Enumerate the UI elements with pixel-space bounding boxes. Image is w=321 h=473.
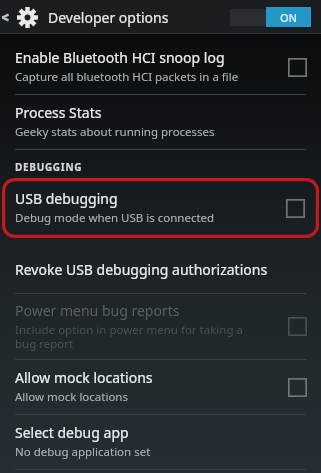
staticText: Developer options — [48, 8, 169, 27]
staticText: Allow mock locations — [15, 389, 128, 405]
staticText: Process Stats — [15, 103, 102, 122]
button[interactable]: USB debugging — [2, 178, 319, 238]
button[interactable]: Navigate up — [0, 0, 11, 34]
staticText: No debug application set — [15, 444, 151, 460]
button[interactable]: Toggle USB debugging — [283, 196, 307, 220]
staticText: Geeky stats about running processes — [15, 124, 215, 140]
button[interactable]: Toggle Enable Bluetooth HCI snoop log — [285, 55, 309, 79]
staticText: Debug mode when USB is connected — [15, 210, 215, 226]
button[interactable]: Allow mock locations — [0, 360, 321, 414]
button[interactable]: Developer options on — [230, 7, 311, 27]
staticText: Capture all bluetooth HCI packets in a f… — [15, 69, 239, 85]
staticText: Select debug app — [15, 423, 129, 442]
button[interactable]: Process Stats — [0, 95, 321, 149]
staticText: DEBUGGING — [15, 160, 83, 174]
staticText: Include option in power menu for taking … — [15, 322, 243, 351]
button[interactable]: Revoke USB debugging authorizations — [0, 247, 321, 293]
button[interactable]: Enable Bluetooth HCI snoop log — [0, 40, 321, 94]
staticText: ON — [280, 10, 298, 25]
staticText: Power menu bug reports — [15, 301, 180, 320]
button[interactable]: Power menu bug reports — [0, 294, 321, 359]
button[interactable]: Select debug app — [0, 415, 321, 469]
button[interactable]: Settings — [14, 4, 40, 30]
button[interactable]: Toggle Allow mock locations — [285, 375, 309, 399]
staticText: Allow mock locations — [15, 368, 153, 387]
staticText: Revoke USB debugging authorizations — [15, 260, 268, 279]
button[interactable]: Toggle Power menu bug reports — [285, 314, 309, 338]
staticText: USB debugging — [15, 189, 118, 208]
staticText: Enable Bluetooth HCI snoop log — [15, 48, 225, 67]
